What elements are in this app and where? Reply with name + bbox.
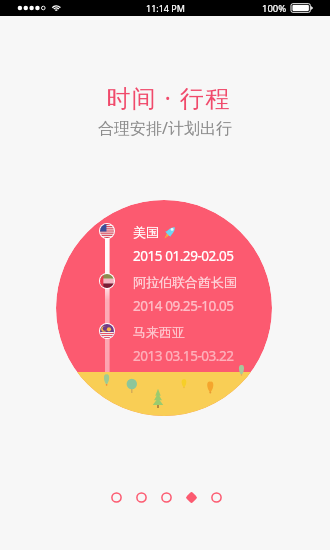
button[interactable]: Page 3 [154,488,179,506]
staticText: 合理安排/计划出行 [98,117,232,139]
staticText: 马来西亚 [133,324,185,340]
staticText: 美国 [133,224,159,240]
button[interactable]: Page 4 [179,488,204,506]
button[interactable]: Page 1 [104,488,129,506]
button[interactable]: Page 2 [129,488,154,506]
staticText: 2014 09.25-10.05 [133,297,234,315]
button[interactable]: 美国 [99,223,115,239]
staticText: 2013 03.15-03.22 [133,347,234,365]
staticText: 11:14 PM [146,2,185,14]
staticText: 阿拉伯联合酋长国 [133,274,237,290]
staticText: 2015 01.29-02.05 [133,247,234,265]
button[interactable]: 马来西亚 [99,323,115,339]
staticText: 时间 · 行程 [106,81,231,114]
button[interactable]: Page 5 [204,488,229,506]
button[interactable]: 阿拉伯联合酋长国 [99,273,115,289]
button[interactable]: Trip timeline [56,200,272,416]
staticText: 100% [262,2,287,15]
